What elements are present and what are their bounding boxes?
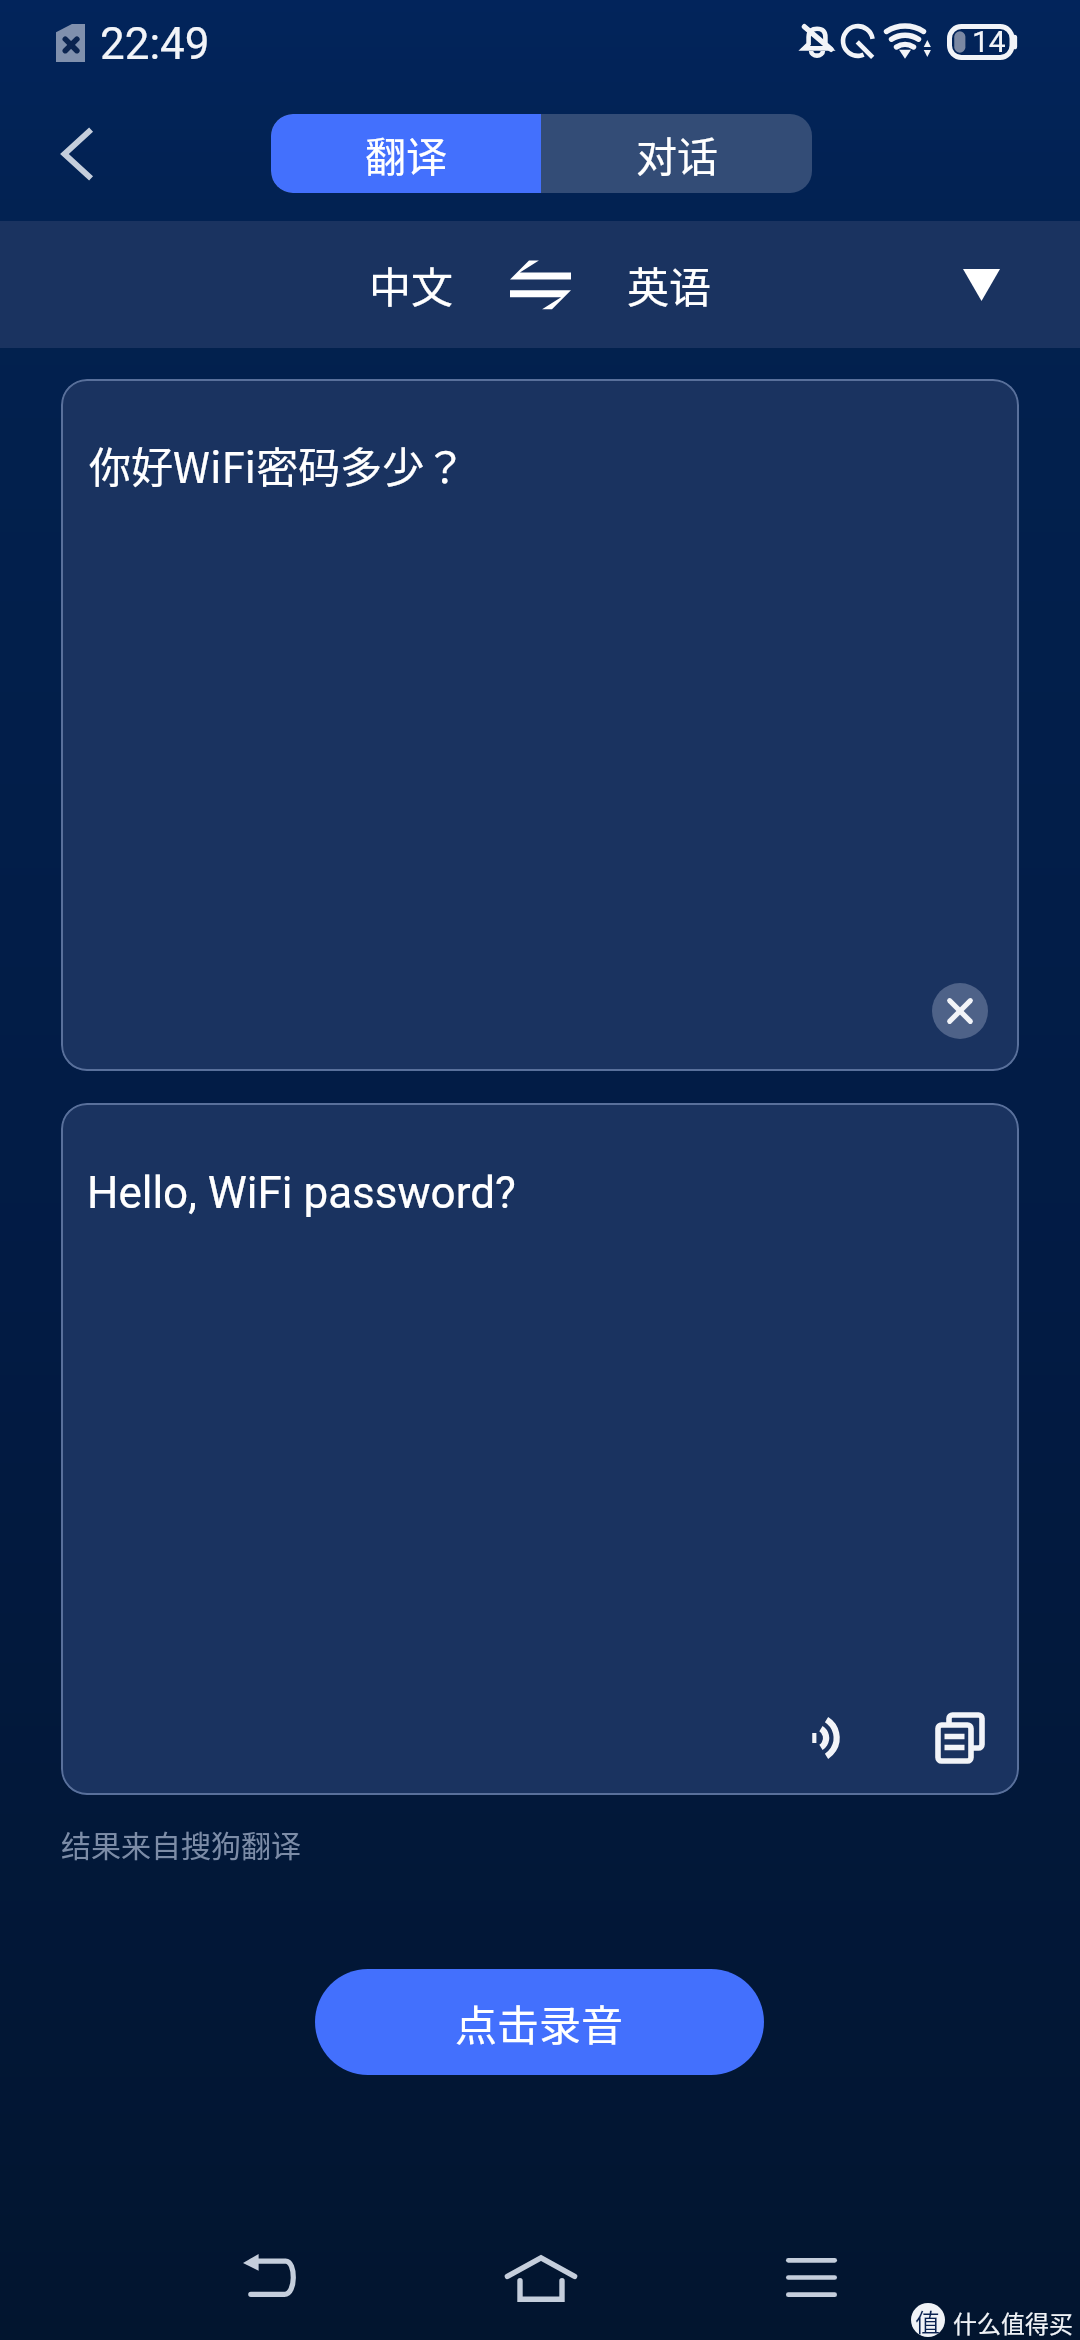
- staticText: 值: [915, 2303, 941, 2337]
- button[interactable]: Back: [213, 2219, 325, 2331]
- button[interactable]: Back: [28, 106, 124, 202]
- staticText: 22:49: [100, 18, 210, 70]
- staticText: 14: [972, 24, 1006, 59]
- button[interactable]: Play audio: [785, 1697, 867, 1779]
- button[interactable]: Choose language: [944, 248, 1018, 322]
- staticText: 点击录音: [455, 1992, 624, 2053]
- staticText: 什么值得买: [953, 2305, 1073, 2340]
- button[interactable]: 中文: [369, 254, 712, 315]
- button[interactable]: 点击录音: [315, 1969, 764, 2075]
- button[interactable]: Clear text: [932, 983, 988, 1039]
- staticText: 中文: [369, 254, 454, 315]
- button[interactable]: Recent apps: [755, 2221, 867, 2333]
- button[interactable]: 翻译: [271, 114, 541, 193]
- staticText: Hello, WiFi password?: [87, 1167, 516, 1219]
- staticText: 翻译: [365, 124, 447, 183]
- staticText: 对话: [636, 124, 718, 183]
- staticText: 英语: [627, 254, 712, 315]
- staticText: 你好WiFi密码多少？: [89, 434, 467, 495]
- button[interactable]: Copy translation: [919, 1697, 1001, 1779]
- staticText: 结果来自搜狗翻译: [61, 1822, 301, 1865]
- button[interactable]: 对话: [541, 114, 812, 193]
- button[interactable]: Home: [485, 2223, 597, 2335]
